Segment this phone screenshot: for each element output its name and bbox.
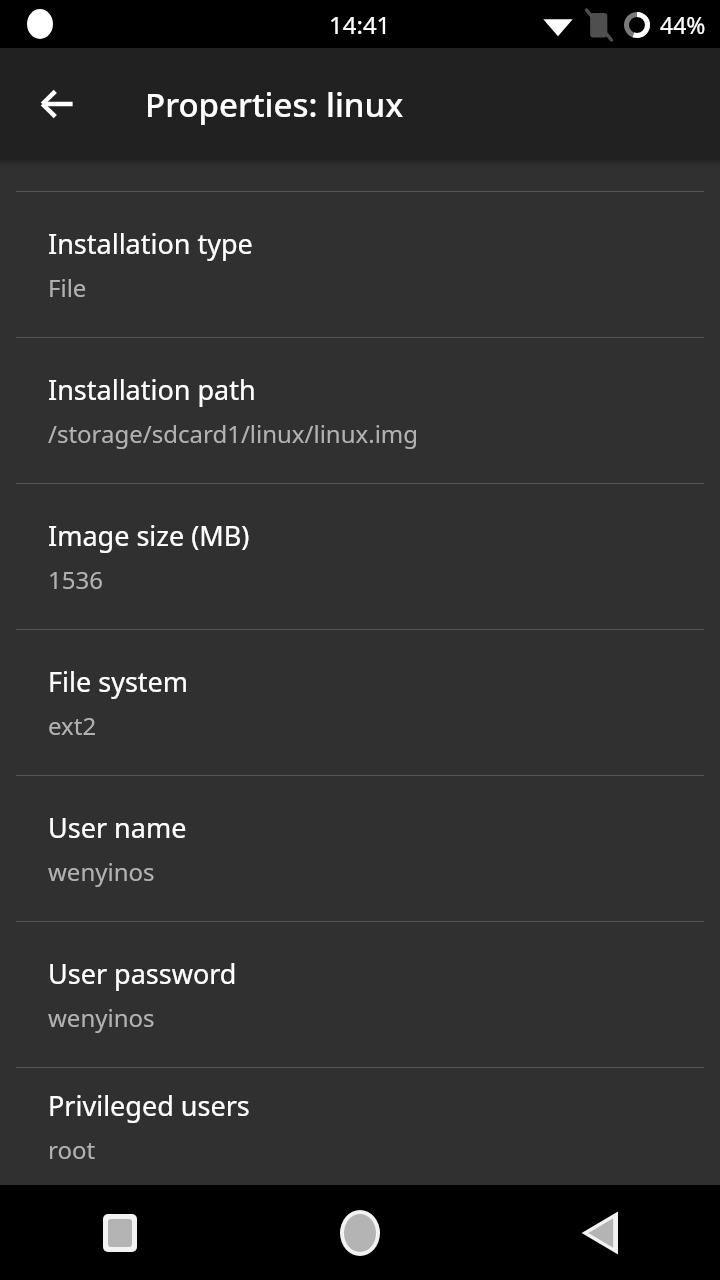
staticText: wenyinos	[48, 855, 155, 888]
staticText: root	[48, 1133, 96, 1166]
staticText: Privileged users	[48, 1087, 250, 1124]
button[interactable]: Navigate up	[17, 64, 97, 144]
staticText: 1536	[48, 563, 103, 596]
staticText: Image size (MB)	[48, 517, 250, 554]
button[interactable]: Privileged users	[0, 1068, 720, 1185]
staticText: /storage/sdcard1/linux/linux.img	[48, 417, 419, 450]
staticText: ext2	[48, 709, 97, 742]
staticText: User name	[48, 809, 187, 846]
staticText: wenyinos	[48, 1001, 155, 1034]
staticText: User password	[48, 955, 237, 992]
staticText: Installation type	[48, 225, 253, 262]
button[interactable]: File system	[0, 630, 720, 775]
staticText: 44%	[660, 9, 706, 40]
button[interactable]: Installation path	[0, 338, 720, 483]
button[interactable]: Recent apps	[0, 1185, 240, 1280]
button[interactable]: Back	[480, 1185, 720, 1280]
button[interactable]: Home	[240, 1185, 480, 1280]
button[interactable]: Image size (MB)	[0, 484, 720, 629]
button[interactable]: User name	[0, 776, 720, 921]
staticText: Properties: linux	[145, 82, 404, 127]
staticText: File system	[48, 663, 189, 700]
staticText: Installation path	[48, 371, 256, 408]
staticText: 14:41	[329, 8, 391, 41]
staticText: File	[48, 271, 87, 304]
button[interactable]: User password	[0, 922, 720, 1067]
button[interactable]: Installation type	[0, 192, 720, 337]
